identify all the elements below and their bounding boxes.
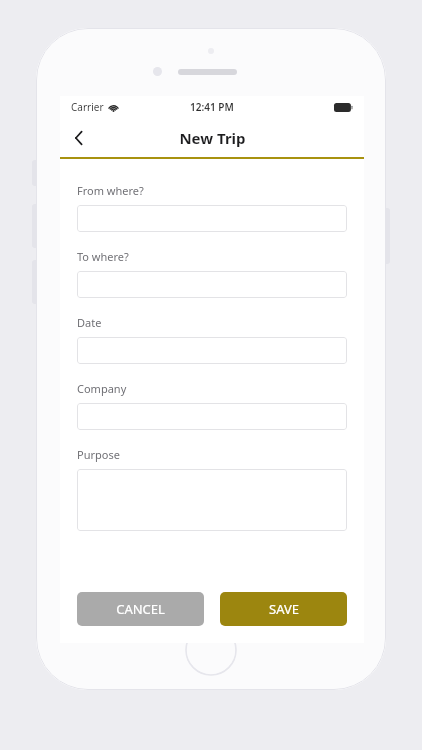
staticText: SAVE [269,600,299,618]
button[interactable]: Back [60,119,98,157]
button[interactable]: SAVE [220,592,347,626]
button[interactable]: CANCEL [77,592,204,626]
staticText: Carrier [71,100,104,114]
button[interactable] [77,469,347,531]
staticText: CANCEL [116,600,165,618]
staticText: New Trip [179,128,246,148]
staticText: Date [77,315,102,330]
button[interactable] [77,337,347,364]
button[interactable] [77,205,347,232]
staticText: Purpose [77,447,120,462]
button[interactable]: Home [185,624,237,676]
button[interactable] [77,271,347,298]
button[interactable] [77,403,347,430]
staticText: Company [77,381,127,396]
staticText: To where? [77,249,129,264]
staticText: 12:41 PM [190,100,234,114]
staticText: From where? [77,183,144,198]
